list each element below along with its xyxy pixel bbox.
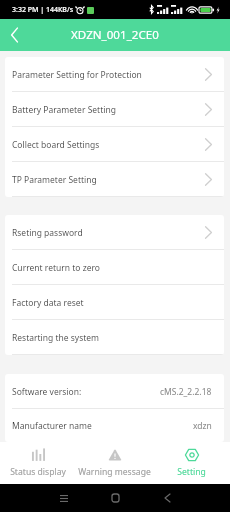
button[interactable]: Rseting password bbox=[5, 215, 224, 250]
staticText: Current return to zero bbox=[12, 262, 100, 274]
staticText: Software version: bbox=[12, 386, 82, 398]
staticText: Manufacturer name bbox=[12, 420, 92, 432]
staticText: Collect board Settings bbox=[12, 139, 100, 151]
button[interactable]: Current return to zero bbox=[5, 250, 224, 285]
staticText: Factory data reset bbox=[12, 297, 84, 309]
staticText: Parameter Setting for Protection bbox=[12, 69, 142, 81]
staticText: Rseting password bbox=[12, 227, 83, 239]
staticText: 3:32 PM | 144KB/s bbox=[12, 5, 74, 15]
staticText: XDZN_001_2CE0 bbox=[71, 27, 159, 43]
staticText: Setting bbox=[177, 466, 206, 478]
button[interactable]: Battery Parameter Setting bbox=[5, 92, 224, 127]
button[interactable]: TP Parameter Setting bbox=[5, 162, 224, 197]
button[interactable]: Restarting the system bbox=[5, 320, 224, 355]
button[interactable]: Back bbox=[151, 484, 184, 512]
button[interactable]: Collect board Settings bbox=[5, 127, 224, 162]
staticText: Status display bbox=[10, 466, 66, 478]
button[interactable]: Home bbox=[99, 484, 132, 512]
staticText: TP Parameter Setting bbox=[12, 174, 97, 186]
button[interactable]: Setting bbox=[153, 448, 230, 478]
staticText: Restarting the system bbox=[12, 332, 100, 344]
staticText: Battery Parameter Setting bbox=[12, 104, 116, 116]
staticText: xdzn bbox=[193, 420, 212, 432]
staticText: Warning message bbox=[78, 466, 151, 478]
staticText: cMS.2_2.2.18 bbox=[160, 386, 212, 398]
button[interactable]: Warning message bbox=[76, 448, 153, 478]
button[interactable]: Parameter Setting for Protection bbox=[5, 57, 224, 92]
button[interactable]: Recent apps bbox=[47, 484, 80, 512]
button[interactable]: Status display bbox=[0, 448, 76, 478]
button[interactable]: Factory data reset bbox=[5, 285, 224, 320]
button[interactable]: Back bbox=[0, 21, 28, 49]
